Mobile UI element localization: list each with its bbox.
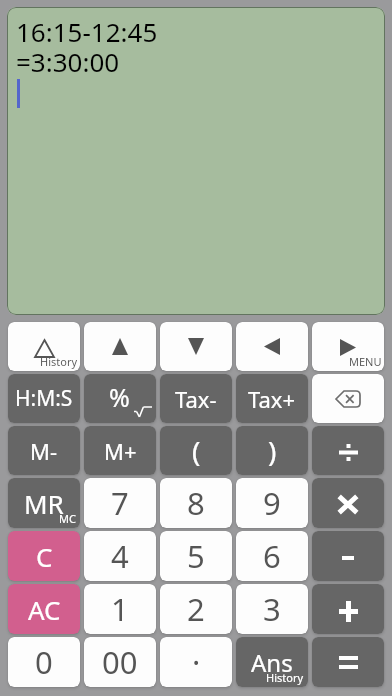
button[interactable]: M+ [84,426,156,475]
staticText: MR [24,486,64,521]
button[interactable]: Tax+ [236,374,308,423]
button[interactable]: % [84,374,156,423]
button[interactable]: MR [8,478,80,528]
staticText: ( [192,432,201,470]
button[interactable]: ) [236,426,308,475]
staticText: Ans [251,646,293,679]
button[interactable]: · [160,637,232,687]
button[interactable]: 5 [160,531,232,581]
staticText: C [36,539,53,574]
button[interactable]: Multiply [312,478,384,528]
staticText: M- [30,436,58,466]
button[interactable]: 6 [236,531,308,581]
button[interactable]: 7 [84,478,156,528]
button[interactable]: 0 [8,637,80,687]
staticText: 16:15-12:45 =3:30:00 [16,14,158,80]
button[interactable]: H:M:S [8,374,80,423]
staticText: MC [59,511,76,526]
staticText: · [192,641,201,683]
button[interactable]: M- [8,426,80,475]
staticText: 9 [263,482,281,524]
button[interactable]: History [8,322,80,371]
button[interactable]: Tax- [160,374,232,423]
staticText: M+ [104,436,137,466]
button[interactable]: Divide [312,426,384,475]
staticText: 0 [35,641,53,683]
staticText: Tax+ [248,384,296,414]
staticText: 8 [187,482,205,524]
button[interactable]: C [8,531,80,581]
button[interactable]: 2 [160,584,232,634]
button[interactable]: Minus [312,531,384,581]
button[interactable]: 4 [84,531,156,581]
staticText: 4 [111,535,129,577]
button[interactable]: 1 [84,584,156,634]
button[interactable]: Down [160,322,232,371]
button[interactable]: 8 [160,478,232,528]
staticText: 1 [111,588,129,630]
staticText: Tax- [175,384,217,414]
button[interactable]: Left [236,322,308,371]
staticText: MENU [349,354,382,369]
button[interactable]: Right [312,322,384,371]
staticText: 00 [102,641,138,683]
button[interactable]: 9 [236,478,308,528]
button[interactable]: 3 [236,584,308,634]
staticText: H:M:S [15,384,73,413]
button[interactable]: 00 [84,637,156,687]
button[interactable]: Up [84,322,156,371]
button[interactable]: Backspace [312,374,384,423]
staticText: AC [28,592,61,627]
staticText: 5 [187,535,205,577]
staticText: 7 [111,482,129,524]
staticText: History [40,354,78,369]
staticText: ) [268,432,277,470]
button[interactable]: Ans [236,637,308,687]
staticText: 6 [263,535,281,577]
staticText: % [109,380,130,414]
button[interactable]: Plus [312,584,384,634]
button[interactable]: AC [8,584,80,634]
staticText: History [266,670,304,685]
button[interactable]: Equals [312,637,384,687]
staticText: 3 [263,588,281,630]
staticText: 2 [187,588,205,630]
button[interactable]: ( [160,426,232,475]
